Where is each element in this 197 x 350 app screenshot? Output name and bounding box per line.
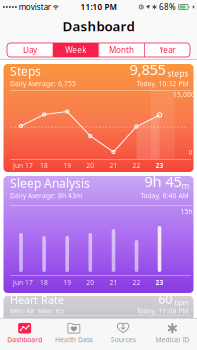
staticText: 68% [159, 2, 176, 12]
staticText: bpm [172, 298, 188, 307]
staticText: 9,855 [129, 59, 165, 79]
staticText: Today, 8:40 AM [140, 191, 188, 200]
staticText: 18 [40, 161, 48, 170]
button[interactable]: Dashboard [0, 319, 49, 344]
staticText: Today, 11:08 PM [136, 307, 188, 315]
staticText: 9h 45 [144, 171, 181, 191]
staticText: 21 [109, 161, 117, 170]
staticText: Jun 17 [13, 278, 33, 287]
staticText: Today, 10:32 PM [136, 79, 188, 88]
staticText: steps [165, 68, 188, 79]
staticText: m [181, 180, 188, 191]
staticText: Jun 17 [13, 161, 33, 170]
button[interactable]: Year [144, 43, 190, 57]
staticText: movistar [19, 2, 51, 12]
staticText: Min: 48 Max: 65 [10, 307, 64, 315]
staticText: Medical ID [155, 335, 189, 344]
staticText: 20 [86, 278, 94, 287]
staticText: 15h [180, 207, 192, 216]
staticText: 22 [132, 161, 140, 170]
staticText: Week [65, 45, 86, 55]
staticText: 18 [40, 278, 48, 287]
staticText: 22 [132, 278, 140, 287]
staticText: Sources [111, 335, 136, 344]
button[interactable]: Month [98, 43, 144, 57]
staticText: 20 [86, 161, 94, 170]
staticText: 19 [63, 161, 71, 170]
staticText: Heart Rate [10, 293, 64, 307]
staticText: Steps [10, 63, 41, 79]
button[interactable]: Week [53, 43, 99, 57]
staticText: Day [23, 45, 37, 55]
staticText: Year [159, 45, 175, 55]
staticText: Dashboard [62, 17, 134, 35]
button[interactable]: Heart Rate [3, 296, 193, 318]
staticText: Dashboard [7, 335, 42, 344]
staticText: 0 [188, 148, 192, 156]
staticText: Health Data [55, 335, 93, 344]
staticText: 21 [109, 278, 117, 287]
staticText: 15,000 [173, 90, 195, 99]
button[interactable]: Sources [98, 319, 148, 344]
staticText: 23 [155, 161, 163, 170]
button[interactable]: Medical ID [148, 319, 197, 344]
staticText: 19 [63, 278, 71, 287]
button[interactable]: Steps [3, 64, 193, 172]
button[interactable]: Sleep Analysis [3, 176, 193, 293]
button[interactable]: Health Data [49, 319, 98, 344]
button[interactable]: Day [7, 43, 53, 57]
staticText: 60 [158, 291, 172, 307]
staticText: 23 [155, 278, 163, 287]
staticText: Sleep Analysis [10, 175, 90, 191]
staticText: 11:10 PM [80, 2, 116, 12]
staticText: Daily Average: 8h 43m [10, 191, 82, 200]
staticText: Daily Average: 6,755 [10, 79, 76, 88]
staticText: Month [109, 45, 134, 55]
